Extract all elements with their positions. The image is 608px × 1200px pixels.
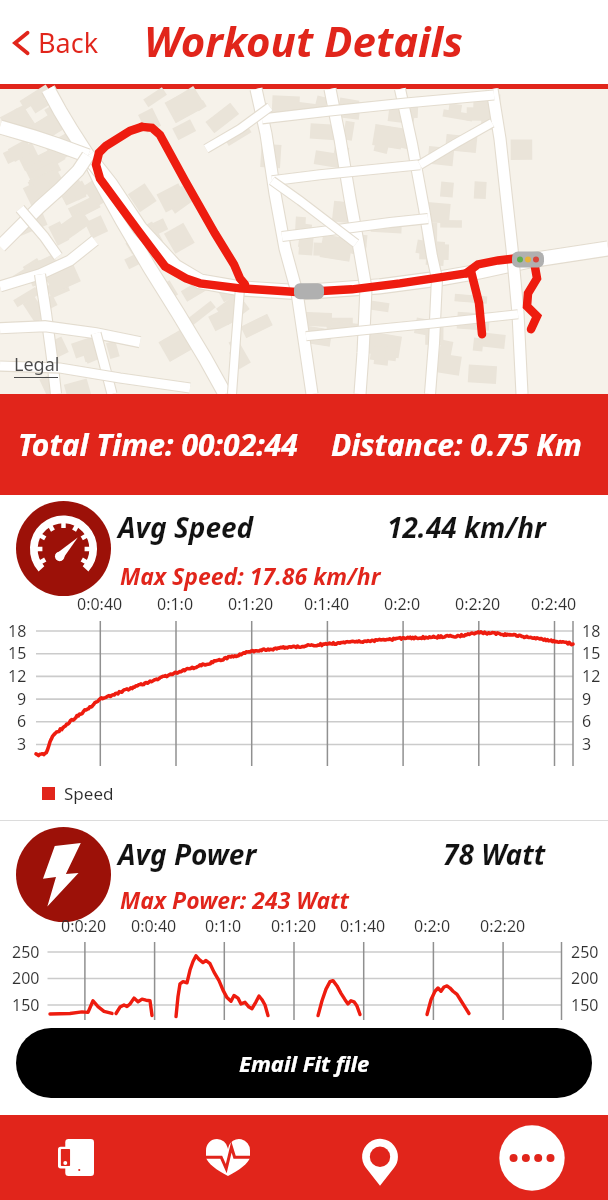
- staticText: 0:0:20: [61, 919, 107, 937]
- button[interactable]: Speed: [42, 775, 114, 811]
- staticText: 200: [12, 967, 40, 989]
- staticText: Email Fit file: [239, 1048, 370, 1078]
- staticText: 18: [582, 620, 601, 642]
- staticText: 0:2:20: [455, 593, 501, 615]
- staticText: 250: [571, 941, 599, 963]
- staticText: 0:0:40: [131, 919, 177, 937]
- staticText: 12.44 km/hr: [387, 508, 546, 546]
- staticText: 15: [582, 642, 601, 664]
- button[interactable]: Location: [304, 1115, 456, 1200]
- staticText: 250: [12, 941, 40, 963]
- staticText: 3: [17, 733, 27, 755]
- staticText: 0:1:20: [271, 919, 317, 937]
- staticText: 9: [17, 688, 27, 710]
- staticText: 150: [12, 994, 40, 1016]
- staticText: 12: [8, 665, 27, 687]
- staticText: 12: [582, 665, 601, 687]
- button[interactable]: Back: [6, 24, 99, 61]
- button[interactable]: Email Fit file: [16, 1028, 592, 1098]
- staticText: 0:2:0: [414, 919, 451, 937]
- staticText: 0:1:40: [340, 919, 386, 937]
- button[interactable]: Heart rate: [152, 1115, 304, 1200]
- staticText: Workout Details: [144, 12, 464, 69]
- staticText: 0:1:20: [228, 593, 274, 615]
- button[interactable]: Legal: [14, 352, 60, 378]
- staticText: 0:1:0: [205, 919, 242, 937]
- staticText: Distance: 0.75 Km: [331, 424, 582, 465]
- staticText: 0:1:40: [304, 593, 350, 615]
- staticText: 0:1:0: [157, 593, 194, 615]
- staticText: 0:2:40: [531, 593, 577, 615]
- staticText: Max Speed: 17.86 km/hr: [120, 560, 381, 591]
- staticText: 0:2:0: [384, 593, 421, 615]
- staticText: Avg Speed: [118, 508, 254, 546]
- staticText: Speed: [64, 782, 114, 805]
- staticText: 78 Watt: [443, 835, 546, 873]
- staticText: 150: [571, 994, 599, 1016]
- staticText: Avg Power: [118, 835, 257, 873]
- staticText: Back: [38, 24, 99, 61]
- staticText: 6: [582, 710, 592, 732]
- staticText: Total Time: 00:02:44: [18, 424, 298, 465]
- button[interactable]: Devices: [0, 1115, 152, 1200]
- staticText: 6: [17, 710, 27, 732]
- staticText: 3: [582, 733, 592, 755]
- staticText: 0:2:20: [480, 919, 526, 937]
- staticText: Max Power: 243 Watt: [120, 884, 349, 915]
- staticText: Legal: [14, 352, 60, 377]
- staticText: 200: [571, 967, 599, 989]
- staticText: 18: [8, 620, 27, 642]
- staticText: 0:0:40: [77, 593, 123, 615]
- button[interactable]: More: [456, 1115, 608, 1200]
- staticText: 9: [582, 688, 592, 710]
- staticText: 15: [8, 642, 27, 664]
